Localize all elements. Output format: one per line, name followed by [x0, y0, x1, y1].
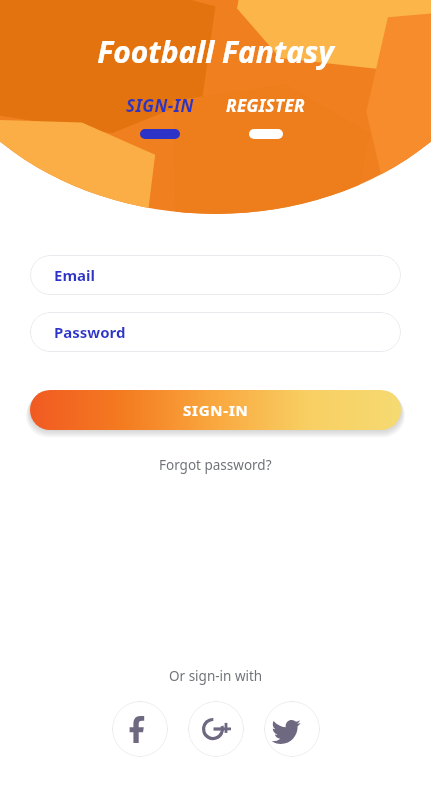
staticText: SIGN-IN — [183, 400, 249, 420]
staticText: Password — [54, 322, 126, 342]
button[interactable]: Email — [30, 255, 401, 295]
button[interactable]: Sign in with Google — [188, 701, 244, 757]
staticText: Email — [54, 265, 95, 285]
button[interactable]: SIGN-IN — [121, 92, 199, 141]
staticText: Or sign-in with — [169, 667, 263, 685]
staticText: SIGN-IN — [126, 94, 194, 117]
button[interactable]: REGISTER — [221, 92, 311, 141]
button[interactable]: Sign in with Twitter — [264, 701, 320, 757]
button[interactable]: SIGN-IN — [30, 390, 401, 430]
button[interactable]: Sign in with Facebook — [112, 701, 168, 757]
staticText: REGISTER — [226, 94, 306, 117]
button[interactable]: Password — [30, 312, 401, 352]
staticText: Football Fantasy — [97, 31, 334, 72]
staticText: Forgot password? — [159, 456, 272, 474]
button[interactable]: Forgot password? — [151, 452, 280, 478]
